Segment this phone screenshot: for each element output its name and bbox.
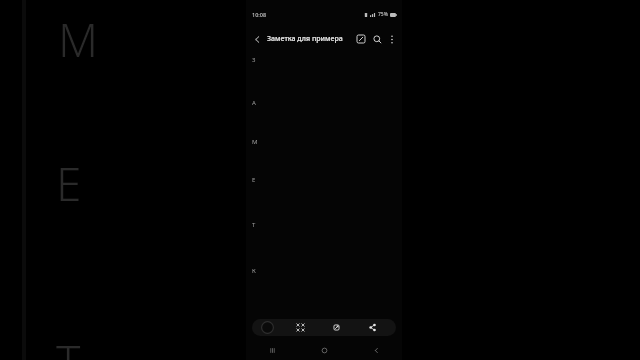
button[interactable]: Back (249, 31, 265, 47)
staticText: M (58, 8, 99, 71)
button[interactable]: Select (282, 319, 318, 336)
staticText: 75% (378, 11, 388, 18)
staticText: E (56, 152, 82, 215)
staticText: К (252, 267, 256, 275)
staticText: Т (252, 221, 256, 229)
button[interactable]: Search (369, 31, 385, 47)
button[interactable]: Add to (353, 31, 369, 47)
button[interactable]: Pen colour (252, 319, 282, 336)
staticText: 10:08 (252, 11, 267, 18)
button[interactable]: Convert (318, 319, 354, 336)
button[interactable]: Recents (246, 340, 298, 360)
button[interactable]: Back (350, 340, 402, 360)
staticText: А (252, 99, 256, 107)
button[interactable]: Home (298, 340, 350, 360)
staticText: T (56, 330, 81, 360)
button[interactable]: More options (385, 32, 399, 46)
button[interactable]: Share (354, 319, 390, 336)
staticText: Е (252, 176, 256, 184)
staticText: З (252, 56, 256, 64)
staticText: Заметка для примера (267, 34, 353, 44)
staticText: М (252, 138, 258, 146)
